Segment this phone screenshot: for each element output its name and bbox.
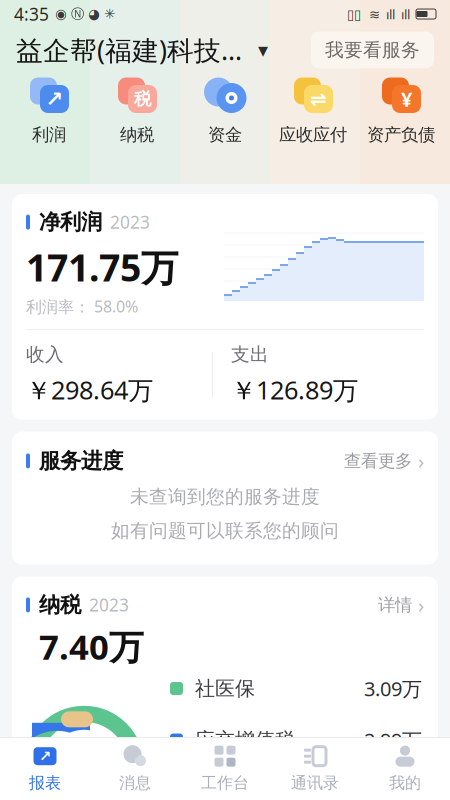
staticText: 7.40万 [39,623,144,669]
button[interactable]: 益企帮(福建)科技… [16,32,268,68]
button[interactable]: 我的 [360,741,450,797]
staticText: 利润率： 58.0% [26,296,138,317]
staticText: 工作台 [201,773,249,793]
staticText: ⇌ [310,88,327,110]
staticText: 通讯录 [291,773,339,793]
staticText: 4:35 [14,2,49,25]
staticText: 消息 [119,773,151,793]
staticText: 纳税 [120,124,154,145]
staticText: 3.09万 [364,675,422,702]
staticText: 如有问题可以联系您的顾问 [111,519,339,542]
staticText: ▯▯ ≋ ıll ıll [347,5,410,23]
staticText: ↗ [45,87,63,111]
staticText: 应收应付 [279,124,347,145]
staticText: 益企帮(福建)科技… [16,32,242,68]
staticText: 我的 [389,773,421,793]
staticText: 支出 [231,343,269,366]
staticText: 税 [134,88,151,110]
button[interactable]: ↗ [5,75,93,145]
staticText: ￥298.64万 [26,373,153,407]
button[interactable]: 通讯录 [270,741,360,797]
staticText: 服务进度 [39,448,123,474]
staticText: ￥126.89万 [231,373,358,407]
staticText: 未查询到您的服务进度 [130,485,320,508]
button[interactable]: 消息 [90,741,180,797]
staticText: 详情 [378,594,412,615]
staticText: ◉ Ⓝ ◕ ✳ [55,6,115,22]
staticText: 报表 [29,773,61,793]
staticText: › [418,592,424,618]
staticText: 净利润 [39,209,102,235]
button[interactable]: 资金 [181,75,269,145]
staticText: 我要看服务 [325,38,420,61]
button[interactable]: 详情 [378,592,424,618]
button[interactable]: ¥ [357,75,445,145]
staticText: 社医保 [195,676,255,701]
button[interactable]: 查看更多 [344,448,424,474]
staticText: ▾ [258,39,268,61]
button[interactable]: 我要看服务 [311,31,434,68]
button[interactable]: 工作台 [180,741,270,797]
staticText: › [418,448,424,474]
staticText: ↗ [39,748,51,764]
staticText: 纳税 [39,592,81,618]
button[interactable]: ⇌ [269,75,357,145]
staticText: 171.75万 [26,242,178,292]
staticText: 查看更多 [344,450,412,471]
staticText: 2.99万 [364,727,422,753]
staticText: 资产负债 [367,124,435,145]
staticText: 0.88万 [364,778,422,800]
staticText: 收入 [26,343,64,366]
staticText: 应交增值税 [195,728,295,752]
staticText: 住房公积金 [195,779,295,800]
button[interactable]: 税 [93,75,181,145]
staticText: ¥ [401,86,412,112]
staticText: 利润 [32,124,66,145]
staticText: 2023 [110,211,150,234]
button[interactable]: ↗ [0,741,90,797]
staticText: 2023 [89,593,129,616]
staticText: 资金 [208,124,242,145]
